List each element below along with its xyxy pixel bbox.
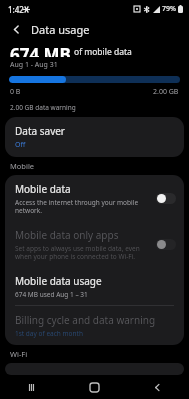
staticText: 2.00 GB data warning	[10, 103, 76, 112]
button[interactable]: Back	[7, 20, 25, 38]
staticText: 674 MB used Aug 1 – 31	[15, 290, 88, 299]
button[interactable]: Home	[63, 375, 126, 399]
staticText: 2.00 GB	[153, 87, 179, 97]
staticText: Mobile data usage	[15, 274, 102, 288]
staticText: 674 MB	[10, 43, 71, 57]
button[interactable]: Billing cycle and data warning	[5, 306, 184, 345]
staticText: Off	[15, 140, 26, 150]
button[interactable]: Mobile data only apps	[5, 222, 184, 268]
button[interactable]: Wi-Fi data usage	[5, 363, 184, 375]
staticText: 0 B	[10, 87, 21, 97]
staticText: Data usage	[31, 22, 90, 37]
button[interactable]: Mobile data usage	[5, 268, 184, 305]
staticText: of mobile data	[74, 46, 132, 57]
staticText: Billing cycle and data warning	[15, 313, 156, 327]
staticText: Data saver	[15, 124, 65, 138]
staticText: 1:42	[8, 4, 24, 15]
staticText: Access the internet through your mobile …	[15, 198, 150, 215]
button[interactable]: Recents	[0, 375, 63, 399]
staticText: 79%	[162, 4, 176, 14]
button[interactable]: Wi-Fi data usage	[5, 363, 184, 375]
staticText: Wi-Fi	[10, 349, 28, 359]
button[interactable]: Mobile data	[5, 175, 184, 222]
staticText: Mobile data	[15, 182, 71, 196]
button[interactable]: Toggle	[156, 239, 176, 250]
staticText: Aug 1 - Aug 31	[10, 60, 58, 70]
button[interactable]: Data saver	[5, 117, 184, 157]
staticText: 1st day of each month	[15, 329, 83, 338]
button[interactable]: Toggle	[156, 193, 176, 204]
button[interactable]: Back	[126, 375, 189, 399]
staticText: Mobile	[10, 161, 35, 171]
staticText: Mobile data only apps	[15, 228, 119, 242]
staticText: Set apps to always use mobile data, even…	[15, 244, 150, 261]
